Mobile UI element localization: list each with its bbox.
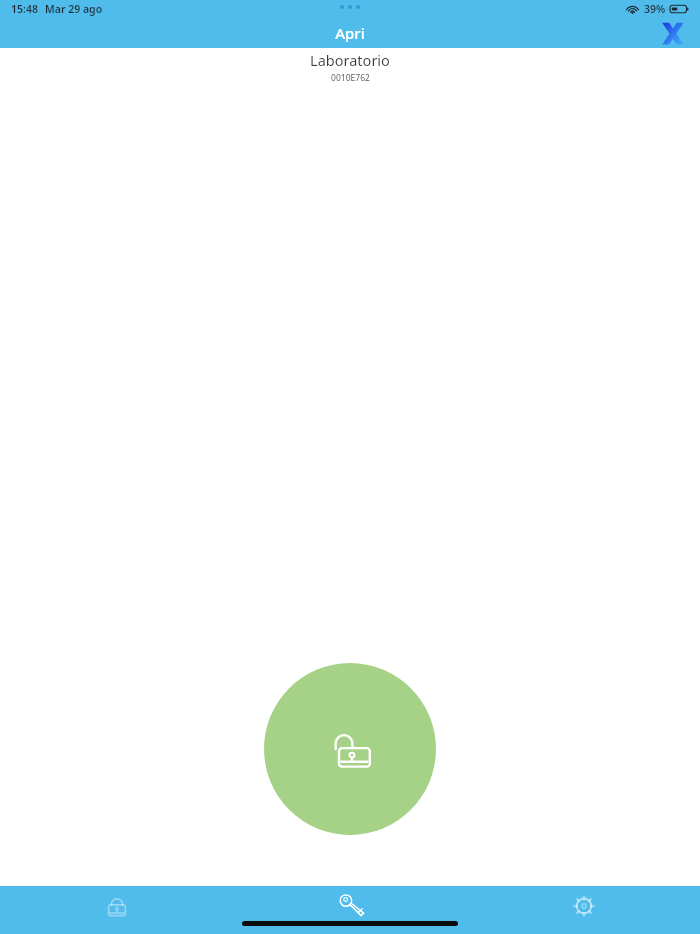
staticText: Mar 29 ago	[45, 2, 103, 16]
button[interactable]: Impostazioni	[467, 886, 700, 926]
button[interactable]: Brand logo	[658, 18, 688, 48]
staticText: Apri	[335, 23, 365, 43]
button[interactable]: Apri - sblocca	[264, 663, 436, 835]
staticText: 15:48	[11, 2, 38, 16]
staticText: 0010E762	[331, 72, 370, 84]
button[interactable]: Apri	[234, 886, 467, 926]
staticText: 39%	[644, 2, 666, 16]
staticText: Laboratorio	[310, 50, 390, 70]
button[interactable]: Chiudi	[0, 886, 234, 926]
